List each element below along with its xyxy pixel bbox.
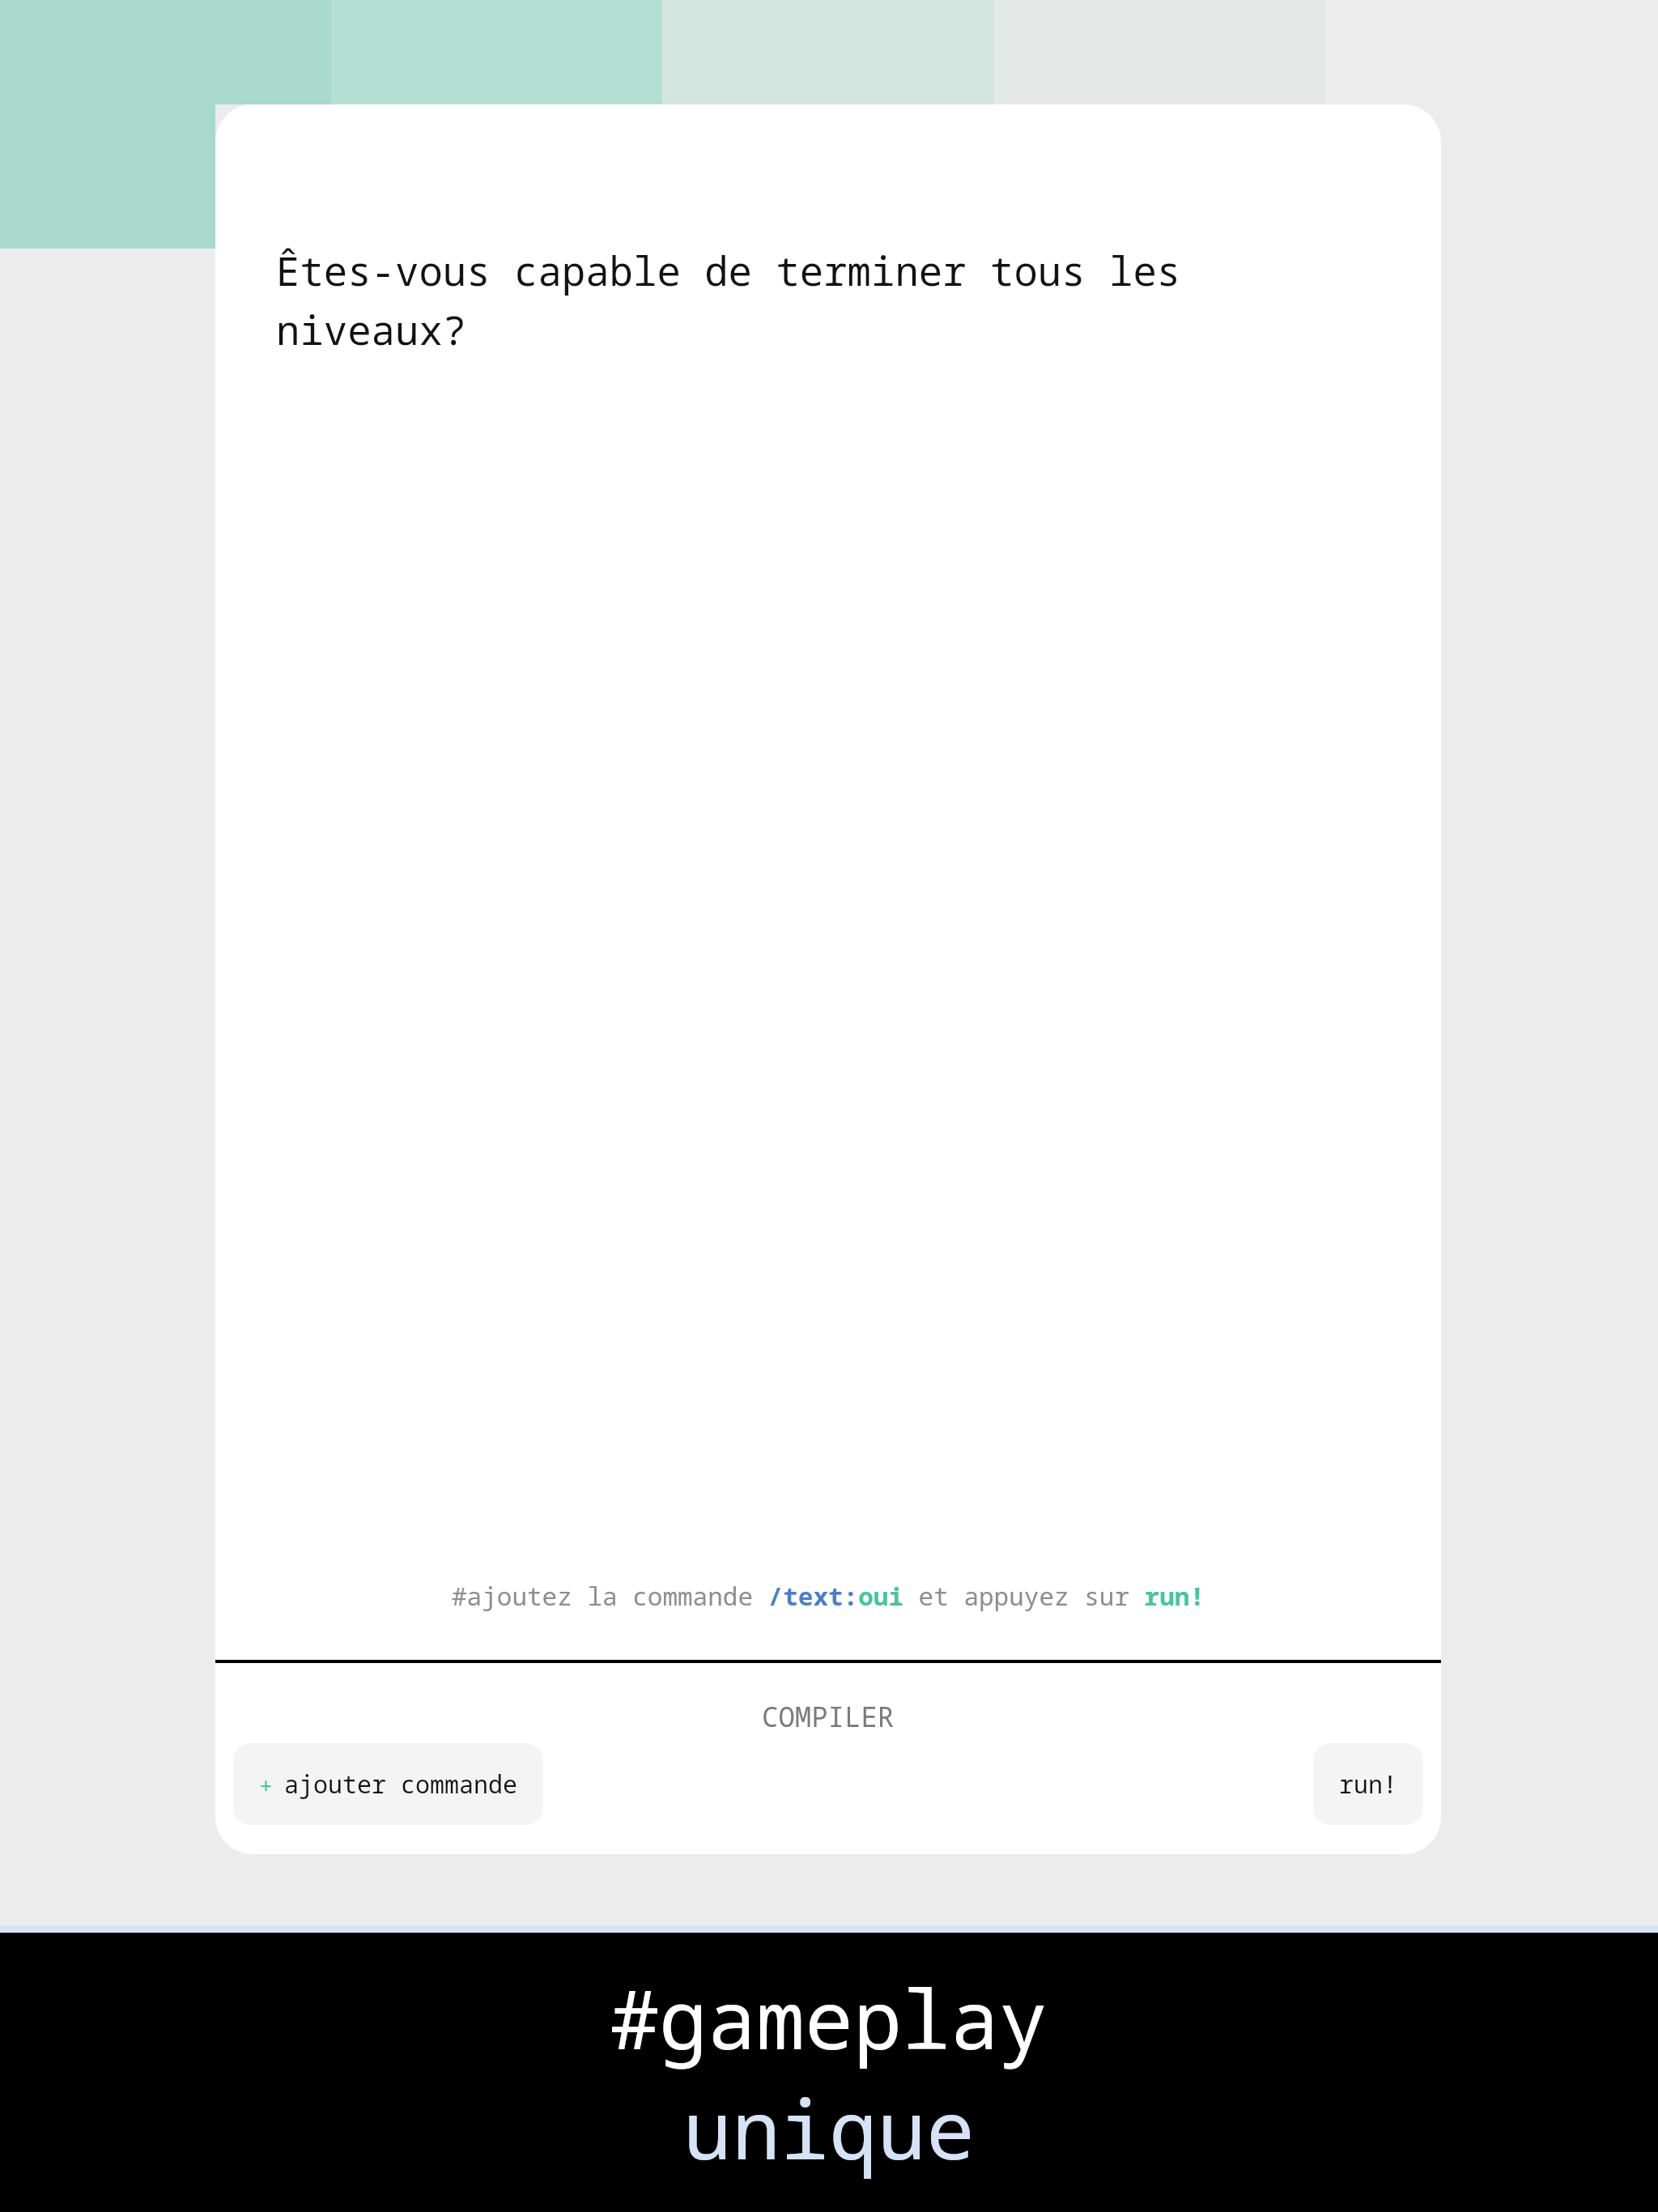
staticText: run! — [1339, 1767, 1397, 1801]
staticText: #gameplay — [610, 1963, 1048, 2073]
staticText: #ajoutez la commande /text:oui et appuye… — [235, 1579, 1422, 1613]
staticText: unique — [683, 2073, 975, 2183]
staticText: COMPILER — [762, 1698, 895, 1735]
button[interactable]: + — [233, 1743, 543, 1825]
staticText: ajouter commande — [284, 1767, 517, 1801]
button[interactable]: run! — [1313, 1743, 1423, 1825]
staticText: + — [259, 1769, 273, 1800]
staticText: Êtes-vous capable de terminer tous les n… — [276, 244, 1376, 356]
